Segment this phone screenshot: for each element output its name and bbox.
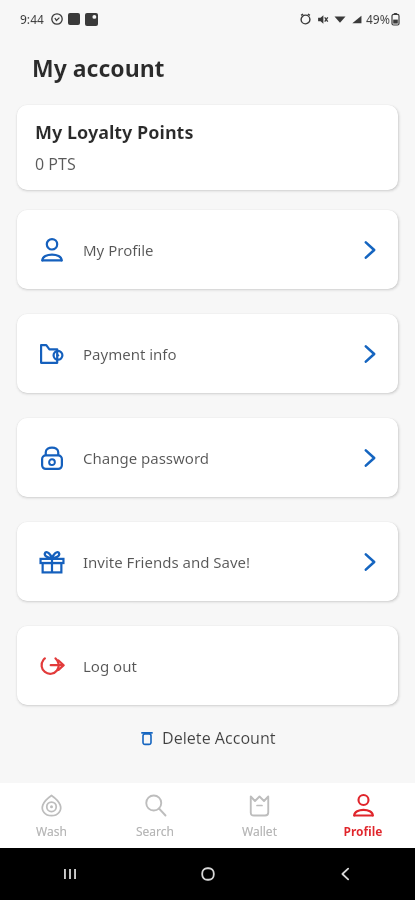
button[interactable]: Wallet [207, 783, 311, 848]
button[interactable]: Profile [311, 783, 415, 848]
button[interactable]: Payment info [17, 314, 398, 393]
button[interactable]: Delete Account [129, 721, 286, 755]
button[interactable]: My Profile [17, 210, 398, 289]
staticText: My Loyalty Points [35, 120, 194, 145]
staticText: Invite Friends and Save! [83, 552, 251, 572]
staticText: My account [32, 52, 165, 83]
staticText: 0 PTS [35, 153, 76, 175]
staticText: My Profile [83, 240, 154, 260]
staticText: Log out [83, 656, 137, 676]
staticText: 9:44 [20, 11, 44, 27]
staticText: Profile [343, 823, 383, 839]
button[interactable]: Invite Friends and Save! [17, 522, 398, 601]
staticText: Search [136, 823, 174, 839]
button[interactable]: Change password [17, 418, 398, 497]
staticText: Wallet [242, 823, 277, 839]
staticText: Change password [83, 448, 210, 468]
staticText: 49% [366, 11, 390, 27]
button[interactable]: Wash [0, 783, 103, 848]
button[interactable]: Search [103, 783, 207, 848]
staticText: Wash [36, 823, 67, 839]
button[interactable]: Log out [17, 626, 398, 705]
staticText: Delete Account [162, 727, 276, 749]
button[interactable]: My Loyalty Points [17, 105, 398, 190]
staticText: Payment info [83, 344, 177, 364]
